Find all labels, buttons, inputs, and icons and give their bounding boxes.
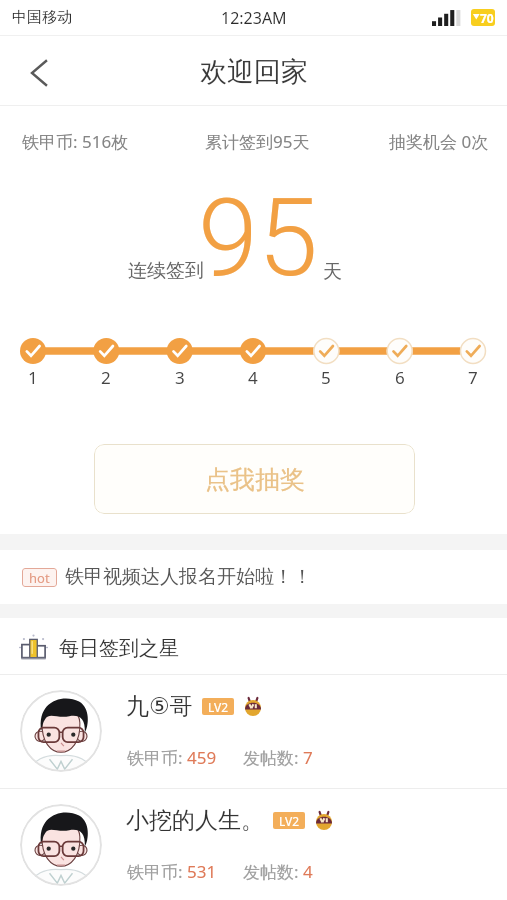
button[interactable]: 点我抽奖 (94, 444, 415, 514)
staticText: 铁甲币: (127, 746, 187, 769)
staticText: 70 (480, 10, 494, 26)
staticText: LV2 (279, 813, 300, 829)
staticText: 铁甲币: (127, 860, 187, 883)
button[interactable]: 九⑤哥 (0, 686, 507, 788)
staticText: 九⑤哥 (126, 692, 193, 721)
staticText: 小挖的人生。 (126, 806, 264, 835)
staticText: 5 (321, 366, 331, 389)
staticText: hot (29, 569, 50, 587)
staticText: 发帖数: (243, 746, 303, 769)
button[interactable]: 5 (309, 336, 343, 389)
button[interactable]: 小挖的人生。 (0, 800, 507, 900)
staticText: 累计签到95天 (205, 130, 310, 153)
staticText: 抽奖机会 0次 (389, 130, 489, 153)
staticText: 4 (303, 860, 313, 883)
staticText: 2 (101, 366, 111, 389)
staticText: 欢迎回家 (200, 55, 308, 89)
staticText: LV2 (208, 699, 229, 715)
staticText: 3 (175, 366, 185, 389)
staticText: 7 (303, 746, 313, 769)
button[interactable]: 4 (236, 336, 270, 389)
button[interactable]: 3 (163, 336, 197, 389)
staticText: 531 (187, 860, 217, 883)
staticText: 铁甲币: 516枚 (22, 130, 129, 153)
staticText: 7 (468, 366, 478, 389)
button[interactable]: Back (15, 47, 63, 99)
button[interactable]: 2 (89, 336, 123, 389)
staticText: 中国移动 (12, 8, 72, 27)
staticText: 铁甲视频达人报名开始啦！！ (65, 565, 312, 589)
staticText: 4 (248, 366, 258, 389)
button[interactable]: 7 (456, 336, 490, 389)
button[interactable]: 1 (16, 336, 50, 389)
staticText: 天 (323, 260, 342, 284)
button[interactable]: 6 (383, 336, 417, 389)
staticText: 点我抽奖 (205, 464, 305, 495)
staticText: 连续签到 (128, 259, 204, 283)
staticText: 6 (395, 366, 405, 389)
staticText: 发帖数: (243, 860, 303, 883)
staticText: 459 (187, 746, 217, 769)
staticText: 95 (198, 175, 318, 285)
staticText: 1 (28, 366, 38, 389)
staticText: 每日签到之星 (59, 636, 179, 661)
button[interactable]: hot (0, 550, 507, 604)
staticText: 12:23AM (221, 7, 287, 29)
